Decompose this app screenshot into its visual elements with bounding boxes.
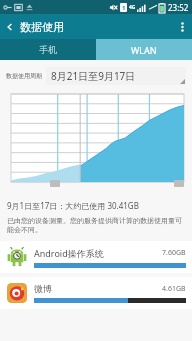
button[interactable]: 微博 bbox=[0, 277, 192, 309]
button[interactable]: More options bbox=[172, 14, 192, 39]
staticText: WLAN bbox=[131, 44, 157, 56]
button[interactable]: Android操作系统 bbox=[0, 241, 192, 273]
button[interactable]: WLAN bbox=[96, 39, 192, 60]
button[interactable]: End handle bbox=[174, 180, 184, 187]
staticText: 4G bbox=[129, 4, 136, 11]
staticText: 数据使用 bbox=[20, 20, 64, 34]
staticText: 手机 bbox=[39, 44, 57, 55]
staticText: 数据使用周期 bbox=[6, 72, 42, 80]
staticText: 4.61GB bbox=[162, 284, 186, 294]
staticText: 7.60GB bbox=[162, 248, 186, 258]
button[interactable]: Start handle bbox=[50, 180, 60, 187]
staticText: 23:52 bbox=[168, 2, 189, 13]
staticText: 1 bbox=[122, 4, 126, 12]
staticText: 微博 bbox=[34, 283, 162, 294]
button[interactable]: 8月21日至9月17日 bbox=[46, 67, 186, 85]
button[interactable]: Back bbox=[0, 19, 18, 35]
button[interactable]: 手机 bbox=[0, 39, 96, 60]
staticText: 9月1日至17日：大约已使用 30.41GB bbox=[7, 200, 139, 211]
staticText: 8月21日至9月17日 bbox=[51, 69, 136, 83]
staticText: 已由您的设备测量。您的服务提供商计算的数据使用量可能会不同。 bbox=[7, 216, 185, 235]
staticText: Android操作系统 bbox=[34, 247, 162, 259]
